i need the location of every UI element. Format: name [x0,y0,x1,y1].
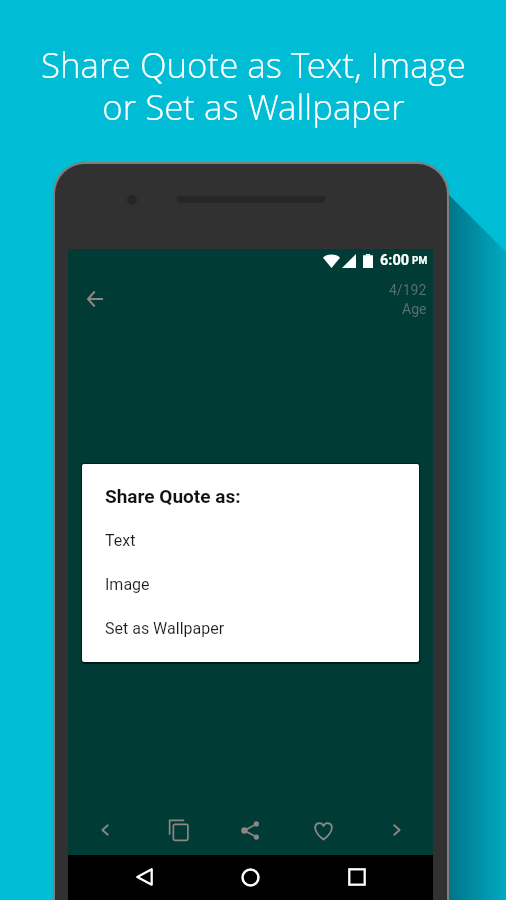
button[interactable]: Favorite [287,805,360,855]
staticText: Text [105,531,136,550]
staticText: PM [412,255,428,267]
button[interactable]: Next quote [360,805,433,855]
button[interactable]: Back [73,277,117,321]
staticText: Image [105,575,150,594]
staticText: Set as Wallpaper [105,619,225,638]
staticText: 4/192 [389,282,427,298]
button[interactable]: Previous quote [68,805,141,855]
staticText: Share Quote as: [105,485,241,507]
button[interactable]: Copy quote [141,805,214,855]
button[interactable]: Back [122,855,166,899]
staticText: Age [402,301,427,317]
staticText: Share Quote as Text, Image or Set as Wal… [41,41,466,130]
button[interactable]: Text [105,531,396,550]
button[interactable]: Recent apps [335,855,379,899]
button[interactable]: Home [228,855,272,899]
button[interactable]: Image [105,575,396,594]
button[interactable]: Set as Wallpaper [105,619,396,638]
staticText: 6:00 [380,252,410,269]
button[interactable]: Share quote [214,805,287,855]
